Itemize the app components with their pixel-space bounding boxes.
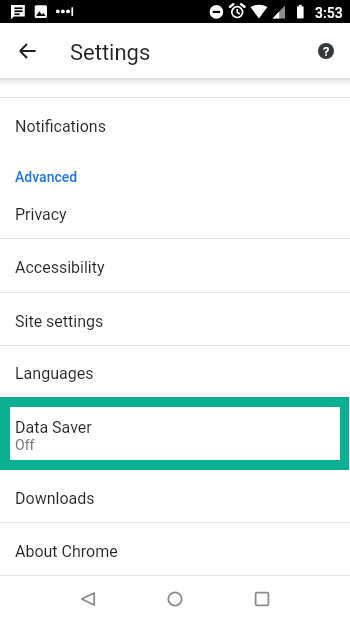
button[interactable]: Data Saver	[10, 407, 340, 460]
staticText: 3:53	[315, 5, 343, 21]
staticText: ?	[323, 44, 330, 59]
button[interactable]: Navigate up	[4, 27, 52, 75]
button[interactable]: Home	[155, 579, 195, 619]
staticText: Downloads	[15, 489, 95, 508]
staticText: Data Saver	[15, 418, 92, 437]
button[interactable]: Notifications	[0, 98, 350, 151]
button[interactable]: Site settings	[0, 293, 350, 345]
button[interactable]: Back	[68, 579, 108, 619]
staticText: Languages	[15, 364, 94, 383]
button[interactable]: Downloads	[0, 470, 350, 522]
staticText: Privacy	[15, 205, 67, 224]
button[interactable]: Accessibility	[0, 239, 350, 292]
staticText: Settings	[70, 40, 151, 66]
staticText: Site settings	[15, 312, 104, 331]
staticText: Accessibility	[15, 258, 105, 277]
staticText: Off	[15, 437, 35, 453]
staticText: About Chrome	[15, 542, 118, 561]
button[interactable]: Languages	[0, 346, 350, 397]
button[interactable]: Privacy	[0, 187, 350, 238]
staticText: Notifications	[15, 117, 106, 136]
staticText: Advanced	[15, 169, 78, 185]
button[interactable]: Recent apps	[242, 579, 282, 619]
button[interactable]: Help and feedback	[306, 31, 346, 71]
button[interactable]: About Chrome	[0, 523, 350, 575]
